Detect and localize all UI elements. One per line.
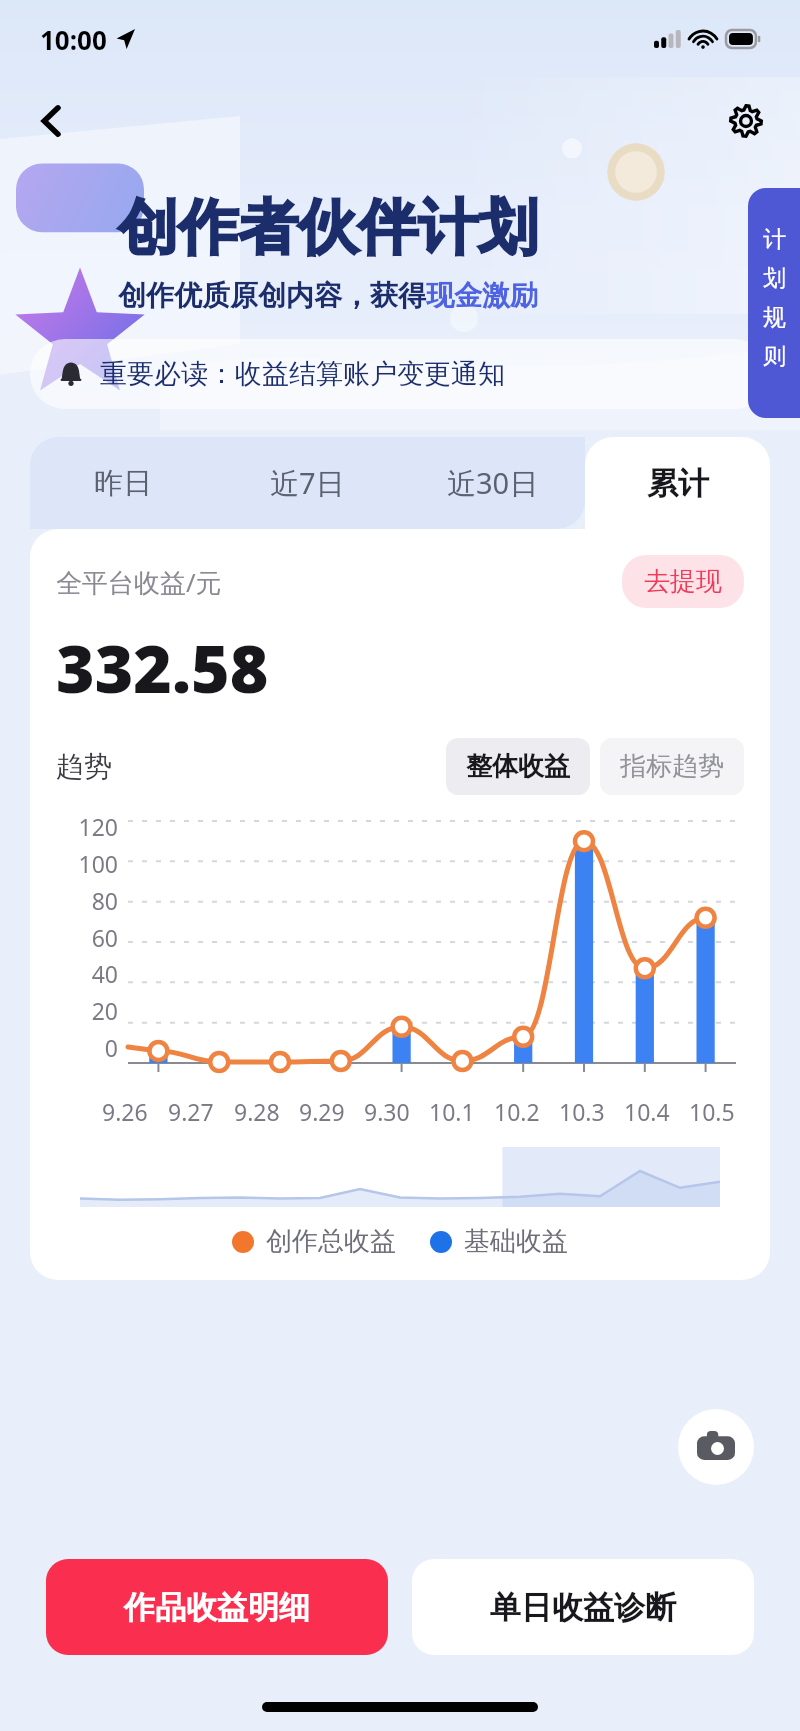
staticText: 332.58 [56,622,269,712]
staticText: 基础收益 [464,1225,568,1258]
button[interactable]: Camera [678,1409,754,1485]
staticText: 创作者伙伴计划 [118,190,538,266]
button[interactable]: 近30日 [400,437,585,529]
button[interactable]: 作品收益明细 [46,1559,388,1655]
staticText: 近30日 [447,463,539,503]
staticText: 去提现 [644,565,722,598]
staticText: 20 [91,995,118,1026]
staticText: 0 [104,1032,118,1063]
button[interactable]: 昨日 [30,437,215,529]
button[interactable]: Back [22,91,82,151]
staticText: 累计 [647,464,709,503]
staticText: 规 [763,303,786,332]
button[interactable]: 单日收益诊断 [412,1559,754,1655]
staticText: 80 [91,885,118,916]
staticText: 计 [763,225,786,254]
staticText: 划 [763,264,786,293]
staticText: 100 [78,848,118,879]
button[interactable]: 累计 [585,437,770,529]
staticText: 120 [78,811,118,842]
button[interactable]: 指标趋势 [600,738,744,795]
staticText: 全平台收益/元 [56,564,222,600]
staticText: 40 [91,958,118,989]
button[interactable]: 近7日 [215,437,400,529]
staticText: 60 [91,922,118,953]
staticText: 单日收益诊断 [490,1588,676,1627]
button[interactable]: 重要必读：收益结算账户变更通知 [30,339,770,409]
staticText: 则 [763,342,786,371]
staticText: 创作总收益 [266,1225,396,1258]
staticText: 9.26 [102,1096,148,1127]
staticText: 昨日 [94,465,152,502]
staticText: 10.1 [429,1096,475,1127]
button[interactable]: 整体收益 [446,738,590,795]
button[interactable]: 计 [748,188,800,418]
staticText: 9.27 [168,1096,214,1127]
staticText: 整体收益 [466,750,570,783]
staticText: 指标趋势 [620,750,724,783]
staticText: 近7日 [270,463,345,503]
staticText: 10.5 [689,1096,735,1127]
staticText: 10.4 [624,1096,670,1127]
staticText: 创作优质原创内容，获得 [118,278,426,313]
staticText: 9.28 [234,1096,280,1127]
button[interactable]: 去提现 [622,555,744,608]
button[interactable]: Settings [716,91,776,151]
staticText: 9.30 [364,1096,410,1127]
staticText: 10:00 [40,22,107,57]
staticText: 现金激励 [426,278,538,313]
staticText: 9.29 [299,1096,345,1127]
staticText: 趋势 [56,749,112,784]
staticText: 作品收益明细 [124,1588,310,1627]
staticText: 10.2 [494,1096,540,1127]
staticText: 10.3 [559,1096,605,1127]
staticText: 重要必读：收益结算账户变更通知 [100,357,505,391]
